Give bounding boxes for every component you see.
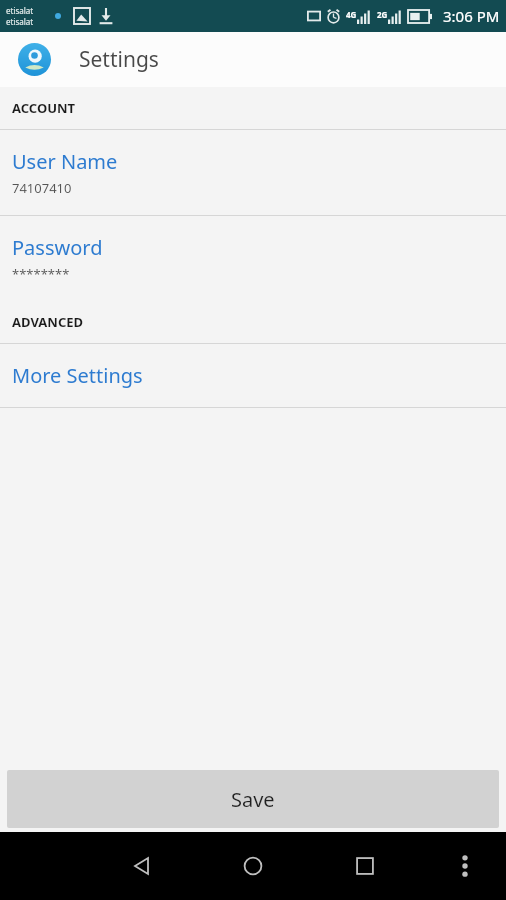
button[interactable]: Recent apps — [341, 842, 389, 890]
staticText: etisalat — [6, 16, 34, 27]
staticText: 4G — [346, 9, 357, 20]
staticText: More Settings — [12, 362, 143, 389]
button[interactable]: Home — [229, 842, 277, 890]
staticText: ACCOUNT — [12, 99, 76, 117]
button[interactable]: Save — [7, 770, 499, 828]
button[interactable]: Back — [118, 842, 166, 890]
staticText: 74107410 — [12, 179, 72, 197]
staticText: Password — [12, 234, 103, 261]
staticText: ADVANCED — [12, 313, 84, 331]
staticText: ******** — [12, 265, 70, 283]
staticText: Save — [231, 786, 275, 813]
staticText: Settings — [79, 45, 159, 74]
staticText: 3:06 PM — [443, 6, 500, 26]
button[interactable]: More options — [441, 842, 489, 890]
button[interactable]: User Name — [0, 130, 506, 215]
staticText: User Name — [12, 148, 118, 175]
staticText: etisalat — [6, 5, 34, 16]
button[interactable]: Password — [0, 216, 506, 301]
button[interactable]: More Settings — [0, 344, 506, 407]
staticText: 2G — [377, 9, 388, 20]
